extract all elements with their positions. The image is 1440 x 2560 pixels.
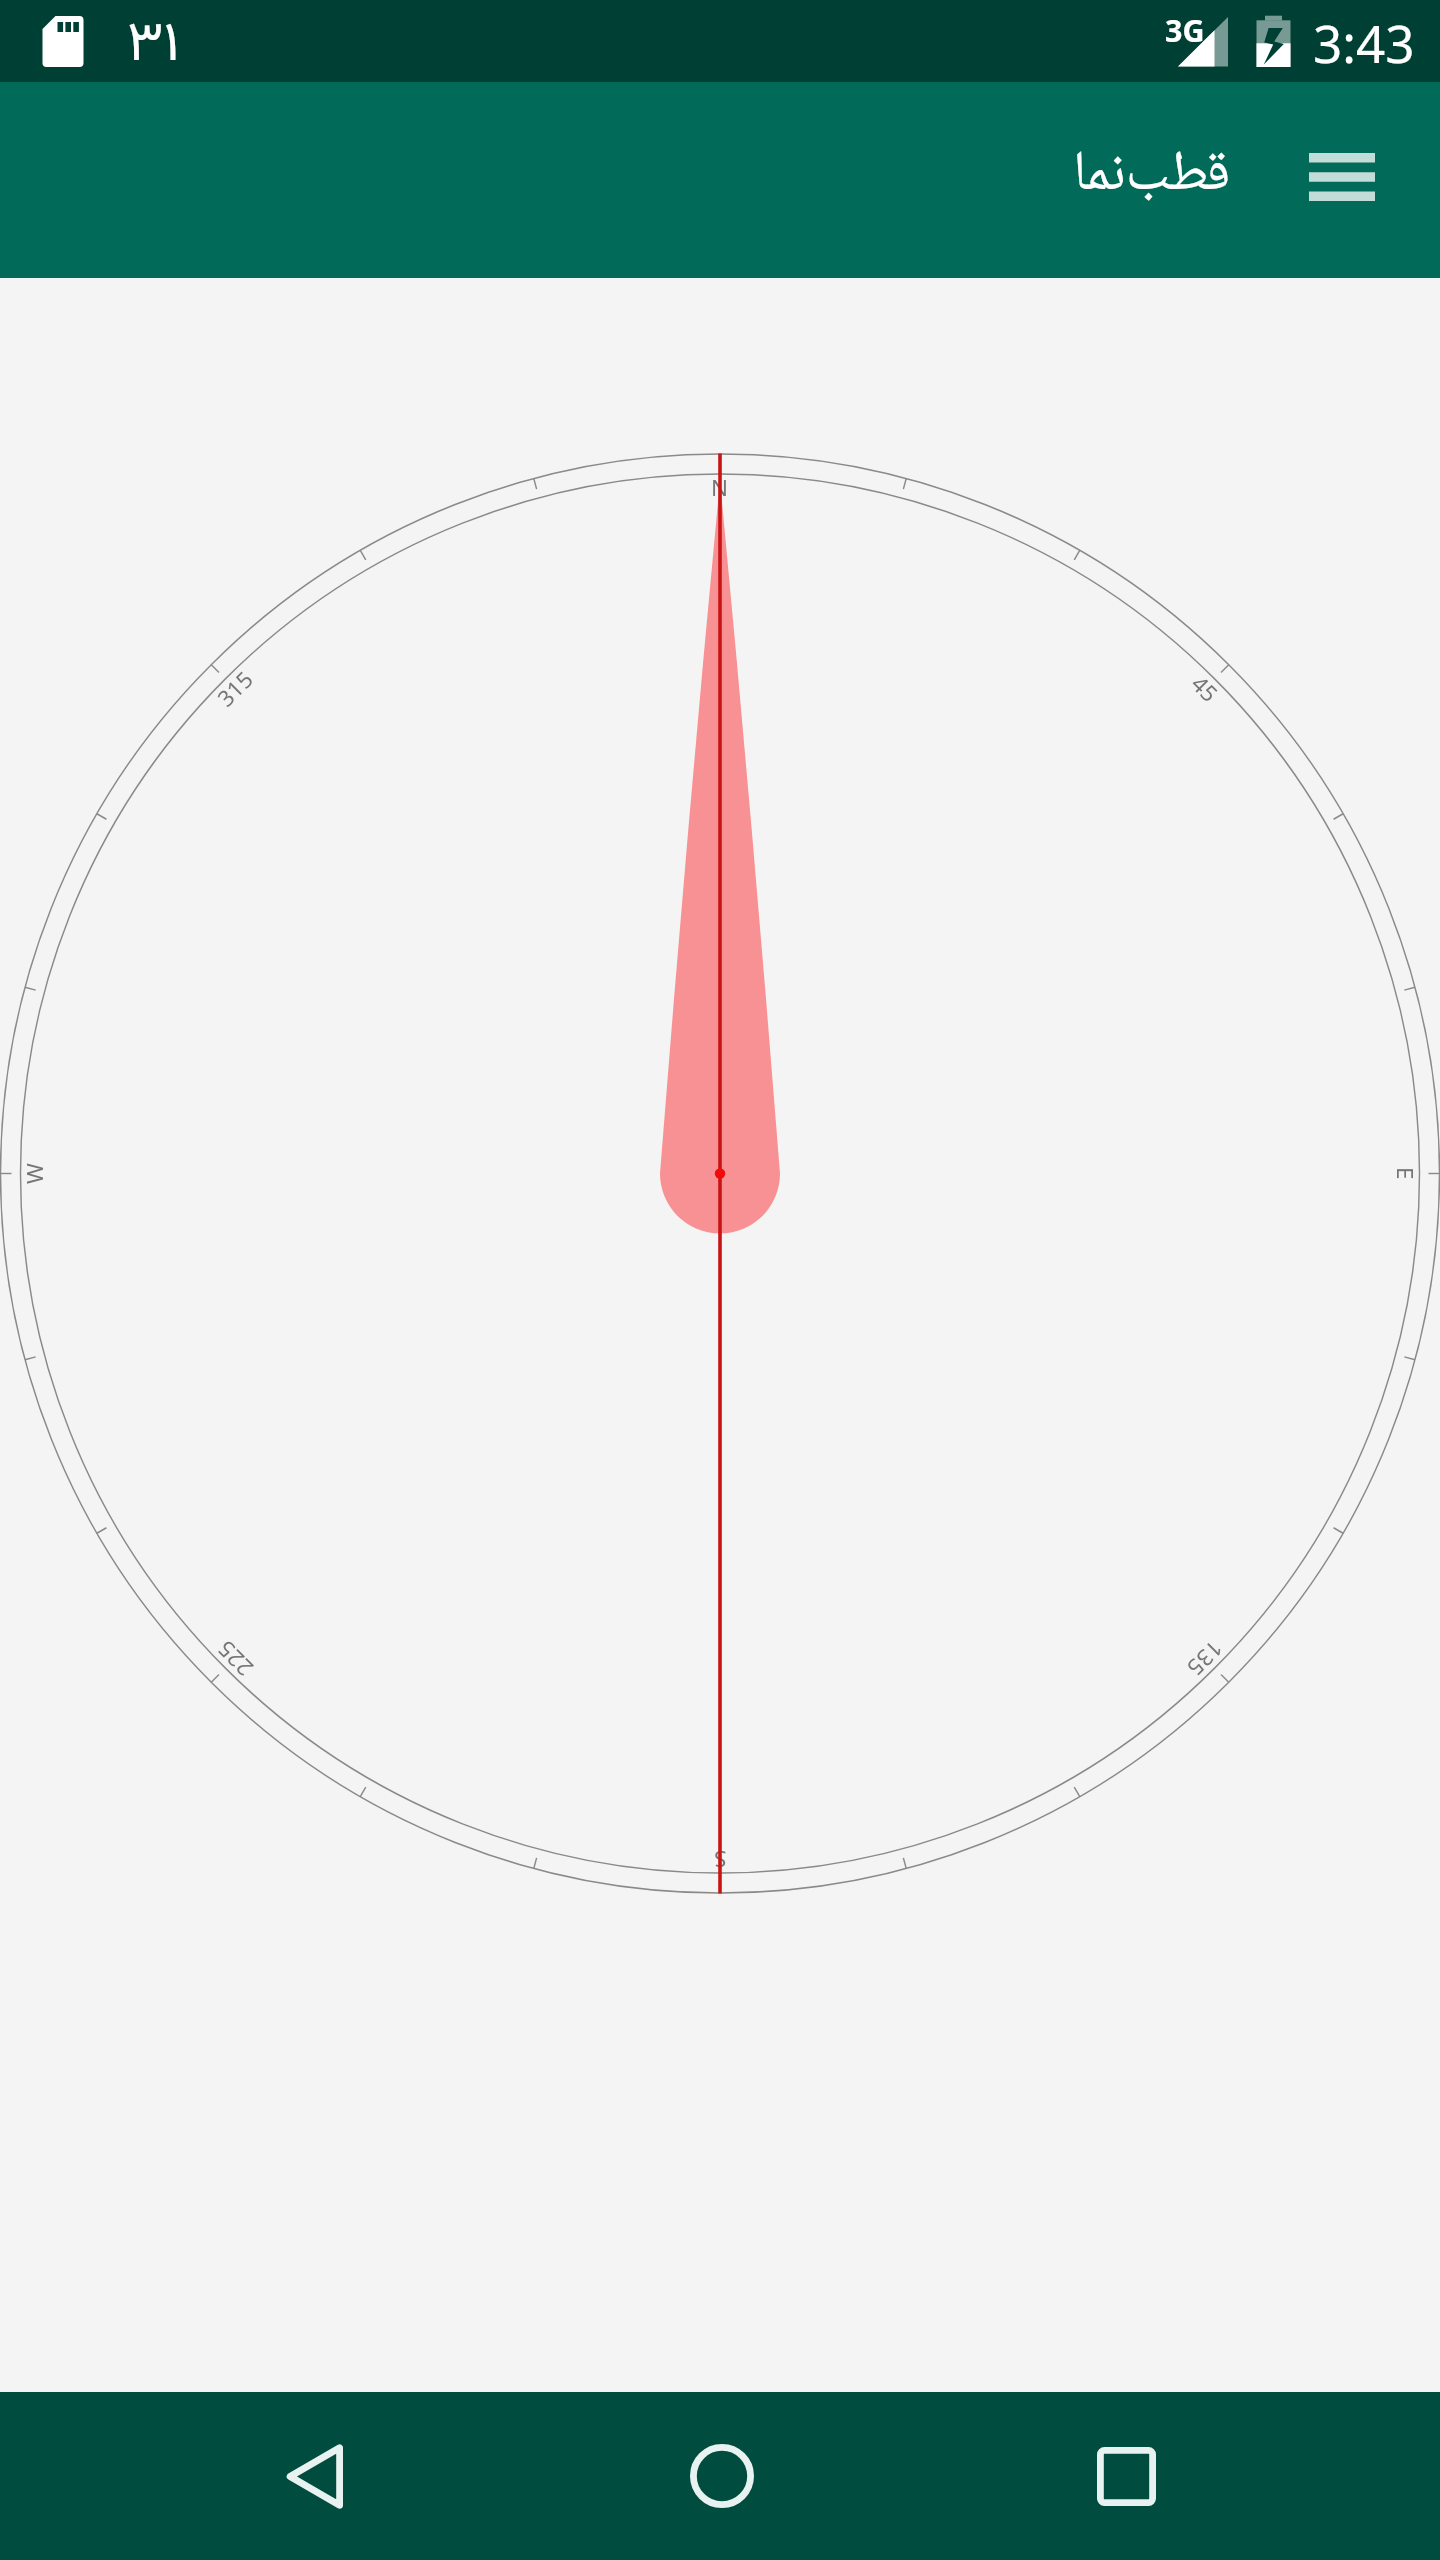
- button[interactable]: Menu: [1244, 79, 1440, 275]
- staticText: 3G: [1165, 9, 1205, 50]
- button[interactable]: Back: [254, 2392, 374, 2560]
- button[interactable]: Recents: [1091, 2392, 1161, 2560]
- staticText: ۳۱: [127, 3, 180, 82]
- staticText: قطب‌نما: [1073, 137, 1231, 213]
- button[interactable]: Home: [685, 2392, 759, 2560]
- staticText: 3:43: [1313, 8, 1415, 78]
